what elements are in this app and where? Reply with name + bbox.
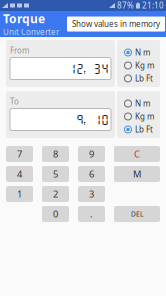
staticText: Unit Converter bbox=[3, 27, 59, 37]
button[interactable]: 3 bbox=[78, 186, 105, 202]
staticText: M bbox=[133, 168, 141, 180]
button[interactable]: N m bbox=[117, 97, 160, 110]
staticText: 0 bbox=[53, 208, 58, 220]
button[interactable]: Kg m bbox=[117, 110, 160, 123]
button[interactable]: 6 bbox=[78, 166, 105, 182]
button[interactable]: 7 bbox=[6, 146, 33, 162]
button[interactable]: Kg m bbox=[117, 59, 160, 72]
staticText: C bbox=[134, 148, 140, 160]
staticText: 1 bbox=[17, 188, 22, 200]
staticText: 9 bbox=[89, 148, 94, 160]
staticText: 12, 34 bbox=[68, 62, 109, 75]
staticText: 21:10 bbox=[142, 0, 164, 11]
staticText: Torque bbox=[3, 11, 45, 27]
button[interactable]: 8 bbox=[42, 146, 69, 162]
button[interactable]: Lb Ft bbox=[117, 72, 160, 85]
staticText: 8 bbox=[53, 148, 58, 160]
button[interactable]: 9, 10 bbox=[10, 109, 111, 131]
staticText: 87% bbox=[117, 0, 134, 11]
button[interactable]: C bbox=[114, 146, 160, 162]
staticText: 7 bbox=[17, 148, 22, 160]
button[interactable]: 2 bbox=[42, 186, 69, 202]
staticText: N m bbox=[135, 98, 150, 109]
staticText: Lb Ft bbox=[135, 73, 153, 84]
button[interactable]: M bbox=[114, 166, 160, 182]
staticText: 5 bbox=[53, 168, 58, 180]
staticText: From bbox=[10, 45, 29, 56]
staticText: 6 bbox=[89, 168, 94, 180]
button[interactable]: 1 bbox=[6, 186, 33, 202]
staticText: Show values in memory bbox=[72, 19, 160, 29]
button[interactable]: Lb Ft bbox=[117, 123, 160, 136]
staticText: Kg m bbox=[135, 111, 154, 122]
button[interactable]: 4 bbox=[6, 166, 33, 182]
button[interactable]: DEL bbox=[114, 206, 160, 222]
staticText: N m bbox=[135, 47, 150, 58]
staticText: Kg m bbox=[135, 60, 154, 71]
button[interactable]: Show values in memory bbox=[67, 16, 165, 31]
staticText: DEL bbox=[131, 210, 143, 218]
button[interactable]: 9 bbox=[78, 146, 105, 162]
staticText: To bbox=[10, 96, 19, 107]
staticText: 2 bbox=[53, 188, 58, 200]
staticText: 3 bbox=[89, 188, 94, 200]
button[interactable]: N m bbox=[117, 46, 160, 59]
button[interactable]: 0 bbox=[42, 206, 69, 222]
staticText: 9, 10 bbox=[76, 113, 109, 126]
button[interactable]: 5 bbox=[42, 166, 69, 182]
staticText: . bbox=[90, 208, 93, 220]
staticText: 4 bbox=[17, 168, 22, 180]
button[interactable]: . bbox=[78, 206, 105, 222]
staticText: Lb Ft bbox=[135, 124, 153, 135]
button[interactable]: 12, 34 bbox=[10, 58, 111, 80]
